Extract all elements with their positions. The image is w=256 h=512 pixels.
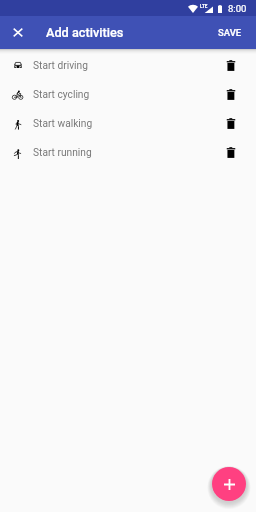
- button[interactable]: SAVE: [210, 16, 250, 49]
- button[interactable]: Add: [212, 467, 246, 501]
- button[interactable]: Start cycling: [0, 80, 256, 109]
- button[interactable]: Start walking: [0, 109, 256, 138]
- staticText: Add activities: [46, 25, 124, 40]
- button[interactable]: Delete: [219, 109, 243, 138]
- staticText: Start walking: [33, 118, 93, 130]
- button[interactable]: Start driving: [0, 51, 256, 80]
- staticText: Start running: [33, 147, 92, 159]
- staticText: Start cycling: [33, 89, 90, 101]
- staticText: LTE: [200, 4, 208, 9]
- staticText: 8:00: [228, 3, 247, 14]
- staticText: SAVE: [218, 27, 242, 38]
- button[interactable]: Close: [0, 16, 36, 49]
- button[interactable]: Start running: [0, 138, 256, 167]
- button[interactable]: Delete: [219, 80, 243, 109]
- staticText: Start driving: [33, 60, 88, 72]
- button[interactable]: Delete: [219, 51, 243, 80]
- button[interactable]: Delete: [219, 138, 243, 167]
